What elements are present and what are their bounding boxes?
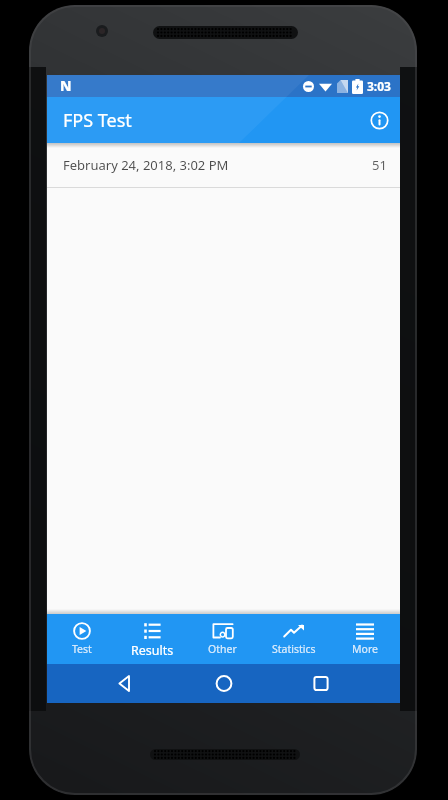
staticText: Other	[208, 642, 237, 656]
button[interactable]: Test	[47, 614, 117, 664]
staticText: 51	[372, 156, 387, 174]
button[interactable]: More	[329, 614, 400, 664]
button[interactable]: Statistics	[258, 614, 329, 664]
button[interactable]	[362, 103, 396, 137]
staticText: 3:03	[367, 78, 391, 94]
staticText: Results	[131, 642, 174, 659]
staticText: Test	[72, 642, 92, 656]
staticText: Statistics	[272, 642, 316, 656]
staticText: N	[60, 76, 72, 95]
button[interactable]: February 24, 2018, 3:02 PM	[47, 143, 400, 187]
staticText: More	[352, 642, 378, 656]
button[interactable]	[116, 674, 136, 694]
button[interactable]	[214, 674, 234, 694]
button[interactable]: Other	[187, 614, 258, 664]
button[interactable]: Results	[117, 614, 187, 664]
staticText: February 24, 2018, 3:02 PM	[63, 156, 229, 174]
button[interactable]	[311, 674, 331, 694]
staticText: FPS Test	[63, 108, 132, 133]
